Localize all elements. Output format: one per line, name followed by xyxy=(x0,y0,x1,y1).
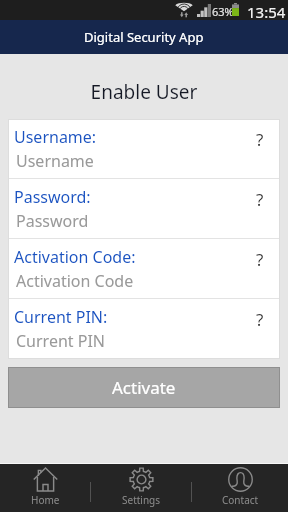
staticText: Enable User xyxy=(0,79,288,105)
staticText: Username: xyxy=(14,126,97,148)
staticText: Username xyxy=(16,150,94,172)
button[interactable]: Help xyxy=(246,185,274,213)
button[interactable]: Activate xyxy=(8,367,280,408)
staticText: Activation Code: xyxy=(14,246,136,268)
button[interactable]: Contact xyxy=(192,464,288,512)
staticText: ? xyxy=(256,248,264,271)
staticText: ? xyxy=(256,308,264,331)
button[interactable]: Activation Code: xyxy=(8,239,280,298)
staticText: Activation Code xyxy=(16,270,134,292)
staticText: ? xyxy=(256,188,264,211)
staticText: Activate xyxy=(112,376,176,399)
button[interactable]: Settings xyxy=(91,464,191,512)
staticText: Password xyxy=(16,210,89,232)
staticText: Password: xyxy=(14,186,91,208)
button[interactable]: Help xyxy=(246,245,274,273)
staticText: 63% xyxy=(212,4,234,19)
staticText: Settings xyxy=(122,493,161,507)
button[interactable]: Password: xyxy=(8,179,280,238)
staticText: Digital Security App xyxy=(84,28,204,46)
staticText: Home xyxy=(31,493,60,507)
button[interactable]: Help xyxy=(246,305,274,333)
staticText: Current PIN xyxy=(16,330,106,352)
button[interactable]: Home xyxy=(0,464,90,512)
button[interactable]: Current PIN: xyxy=(8,299,280,359)
staticText: 13:54 xyxy=(247,2,286,22)
staticText: Contact xyxy=(222,493,259,507)
staticText: Current PIN: xyxy=(14,306,108,328)
button[interactable]: Username: xyxy=(8,119,280,178)
button[interactable]: Help xyxy=(246,125,274,153)
staticText: ? xyxy=(256,128,264,151)
